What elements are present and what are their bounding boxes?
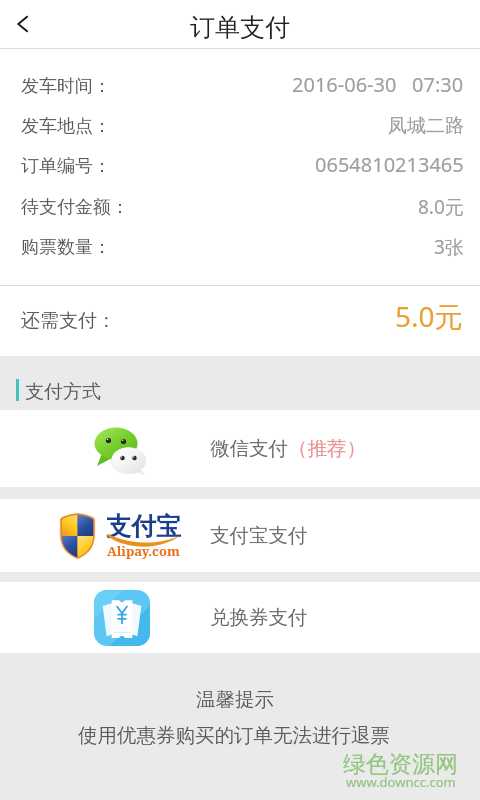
staticText: 5.0元 [395,297,463,335]
staticText: 绿色资源网 [343,750,458,779]
staticText: 支付方式 [25,380,101,404]
staticText: 温馨提示 [0,687,475,712]
staticText: 还需支付： [21,309,116,333]
staticText: 支付宝 [106,511,181,542]
staticText: 凤城二路 [388,114,464,138]
button[interactable]: 支付宝 [0,499,480,572]
button[interactable]: 微信支付（推荐） [0,410,480,487]
staticText: Alipay.com [107,542,180,560]
staticText: 微信支付（推荐） [210,436,366,461]
staticText: 发车时间： [21,75,111,98]
staticText: 2016-06-30 07:30 [292,71,464,98]
staticText: 0654810213465 [315,151,464,178]
staticText: 发车地点： [21,115,111,138]
button[interactable]: 兑换券支付 [0,582,480,653]
staticText: 使用优惠券购买的订单无法进行退票 [0,723,474,748]
staticText: 订单编号： [21,155,111,178]
staticText: www.downcc.com [346,773,456,791]
staticText: 待支付金额： [21,196,129,219]
staticText: 3张 [434,234,464,260]
button[interactable]: Back [0,1,46,47]
staticText: 兑换券支付 [210,605,308,630]
staticText: 支付宝支付 [210,523,308,548]
staticText: 购票数量： [21,236,111,259]
staticText: 订单支付 [190,12,290,43]
staticText: 8.0元 [418,194,464,220]
